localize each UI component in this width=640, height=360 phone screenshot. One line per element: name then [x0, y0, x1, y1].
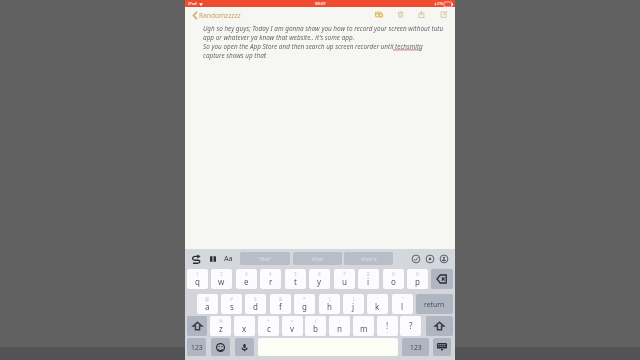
staticText: 2: [220, 271, 223, 277]
button[interactable]: Delete: [395, 9, 406, 20]
button[interactable]: that: [293, 252, 342, 265]
button[interactable]: Account: [439, 254, 449, 264]
button[interactable]: Numbers: [187, 338, 206, 356]
button[interactable]: l: [392, 294, 413, 314]
button[interactable]: z: [210, 316, 231, 336]
staticText: ,: [387, 328, 389, 334]
staticText: 08:07: [315, 1, 326, 7]
button[interactable]: g: [294, 294, 315, 314]
button[interactable]: Confirm: [411, 254, 421, 264]
staticText: 9: [392, 271, 395, 277]
button[interactable]: ?: [400, 316, 421, 336]
button[interactable]: Add: [425, 254, 435, 264]
staticText: 6: [318, 271, 321, 277]
staticText: w: [218, 276, 225, 287]
staticText: 5: [294, 271, 297, 277]
button[interactable]: w: [211, 269, 232, 289]
button[interactable]: q: [187, 269, 208, 289]
staticText: n: [337, 323, 342, 334]
button[interactable]: Delete: [431, 269, 453, 289]
staticText: k: [375, 301, 380, 312]
staticText: m: [360, 323, 368, 334]
staticText: o: [391, 276, 396, 287]
button[interactable]: p: [407, 269, 428, 289]
staticText: z: [219, 323, 223, 334]
staticText: g: [302, 301, 307, 312]
staticText: Ugh so hey guys; Today I am gonna show y…: [203, 24, 444, 42]
staticText: :: [363, 318, 365, 324]
button[interactable]: r: [260, 269, 281, 289]
staticText: ;: [339, 318, 341, 324]
button[interactable]: !: [377, 316, 398, 336]
staticText: %: [219, 318, 223, 324]
button[interactable]: y: [309, 269, 330, 289]
staticText: j: [352, 301, 355, 312]
button[interactable]: Shift: [426, 316, 453, 336]
staticText: #: [230, 296, 233, 302]
button[interactable]: Text format: [222, 253, 235, 264]
staticText: 123: [191, 343, 203, 352]
button[interactable]: j: [343, 294, 364, 314]
button[interactable]: Return: [416, 294, 453, 314]
button[interactable]: Numbers: [402, 338, 429, 356]
staticText: Randomzzzzz: [199, 11, 241, 20]
staticText: d: [253, 301, 258, 312]
button[interactable]: n: [329, 316, 350, 336]
staticText: q: [195, 276, 200, 287]
button[interactable]: Shift: [187, 316, 207, 336]
staticText: $: [254, 296, 257, 302]
button[interactable]: Paste: [208, 254, 218, 264]
button[interactable]: e: [236, 269, 257, 289]
staticText: that's: [361, 255, 377, 263]
staticText: 8: [367, 271, 370, 277]
button[interactable]: x: [234, 316, 255, 336]
button[interactable]: b: [305, 316, 326, 336]
staticText: b: [313, 323, 318, 334]
staticText: So you open the App Store and then searc…: [203, 42, 444, 60]
button[interactable]: f: [270, 294, 291, 314]
staticText: =: [291, 318, 294, 324]
staticText: ": [402, 296, 404, 302]
button[interactable]: Lock note: [374, 9, 385, 20]
staticText: 1: [196, 271, 199, 277]
staticText: s: [230, 301, 234, 312]
button[interactable]: “the”: [240, 252, 290, 265]
button[interactable]: Emoji: [211, 338, 230, 356]
staticText: that: [312, 255, 324, 263]
button[interactable]: Dictate: [235, 338, 254, 356]
staticText: 2%: [437, 1, 443, 7]
button[interactable]: k: [367, 294, 388, 314]
button[interactable]: u: [334, 269, 355, 289]
staticText: ): [353, 296, 355, 302]
staticText: 123: [410, 343, 422, 352]
button[interactable]: t: [285, 269, 306, 289]
staticText: u: [342, 276, 347, 287]
staticText: i: [367, 276, 370, 287]
button[interactable]: i: [358, 269, 379, 289]
button[interactable]: that's: [344, 252, 393, 265]
button[interactable]: Compose: [438, 9, 449, 20]
staticText: .: [410, 328, 412, 334]
staticText: ?: [409, 320, 413, 331]
staticText: 7: [343, 271, 346, 277]
button[interactable]: h: [319, 294, 340, 314]
staticText: c: [267, 323, 271, 334]
staticText: f: [279, 301, 282, 312]
button[interactable]: Share: [416, 9, 427, 20]
button[interactable]: m: [353, 316, 374, 336]
button[interactable]: Randomzzzzz: [193, 11, 241, 20]
staticText: /: [315, 318, 317, 324]
button[interactable]: Undo: [191, 254, 201, 264]
button[interactable]: a: [197, 294, 218, 314]
button[interactable]: Hide keyboard: [433, 338, 451, 356]
staticText: h: [327, 301, 332, 312]
staticText: y: [317, 276, 322, 287]
button[interactable]: c: [258, 316, 279, 336]
button[interactable]: s: [221, 294, 242, 314]
button[interactable]: o: [383, 269, 404, 289]
staticText: *: [303, 296, 306, 302]
staticText: Aa: [224, 254, 233, 264]
button[interactable]: v: [282, 316, 303, 336]
button[interactable]: d: [245, 294, 266, 314]
